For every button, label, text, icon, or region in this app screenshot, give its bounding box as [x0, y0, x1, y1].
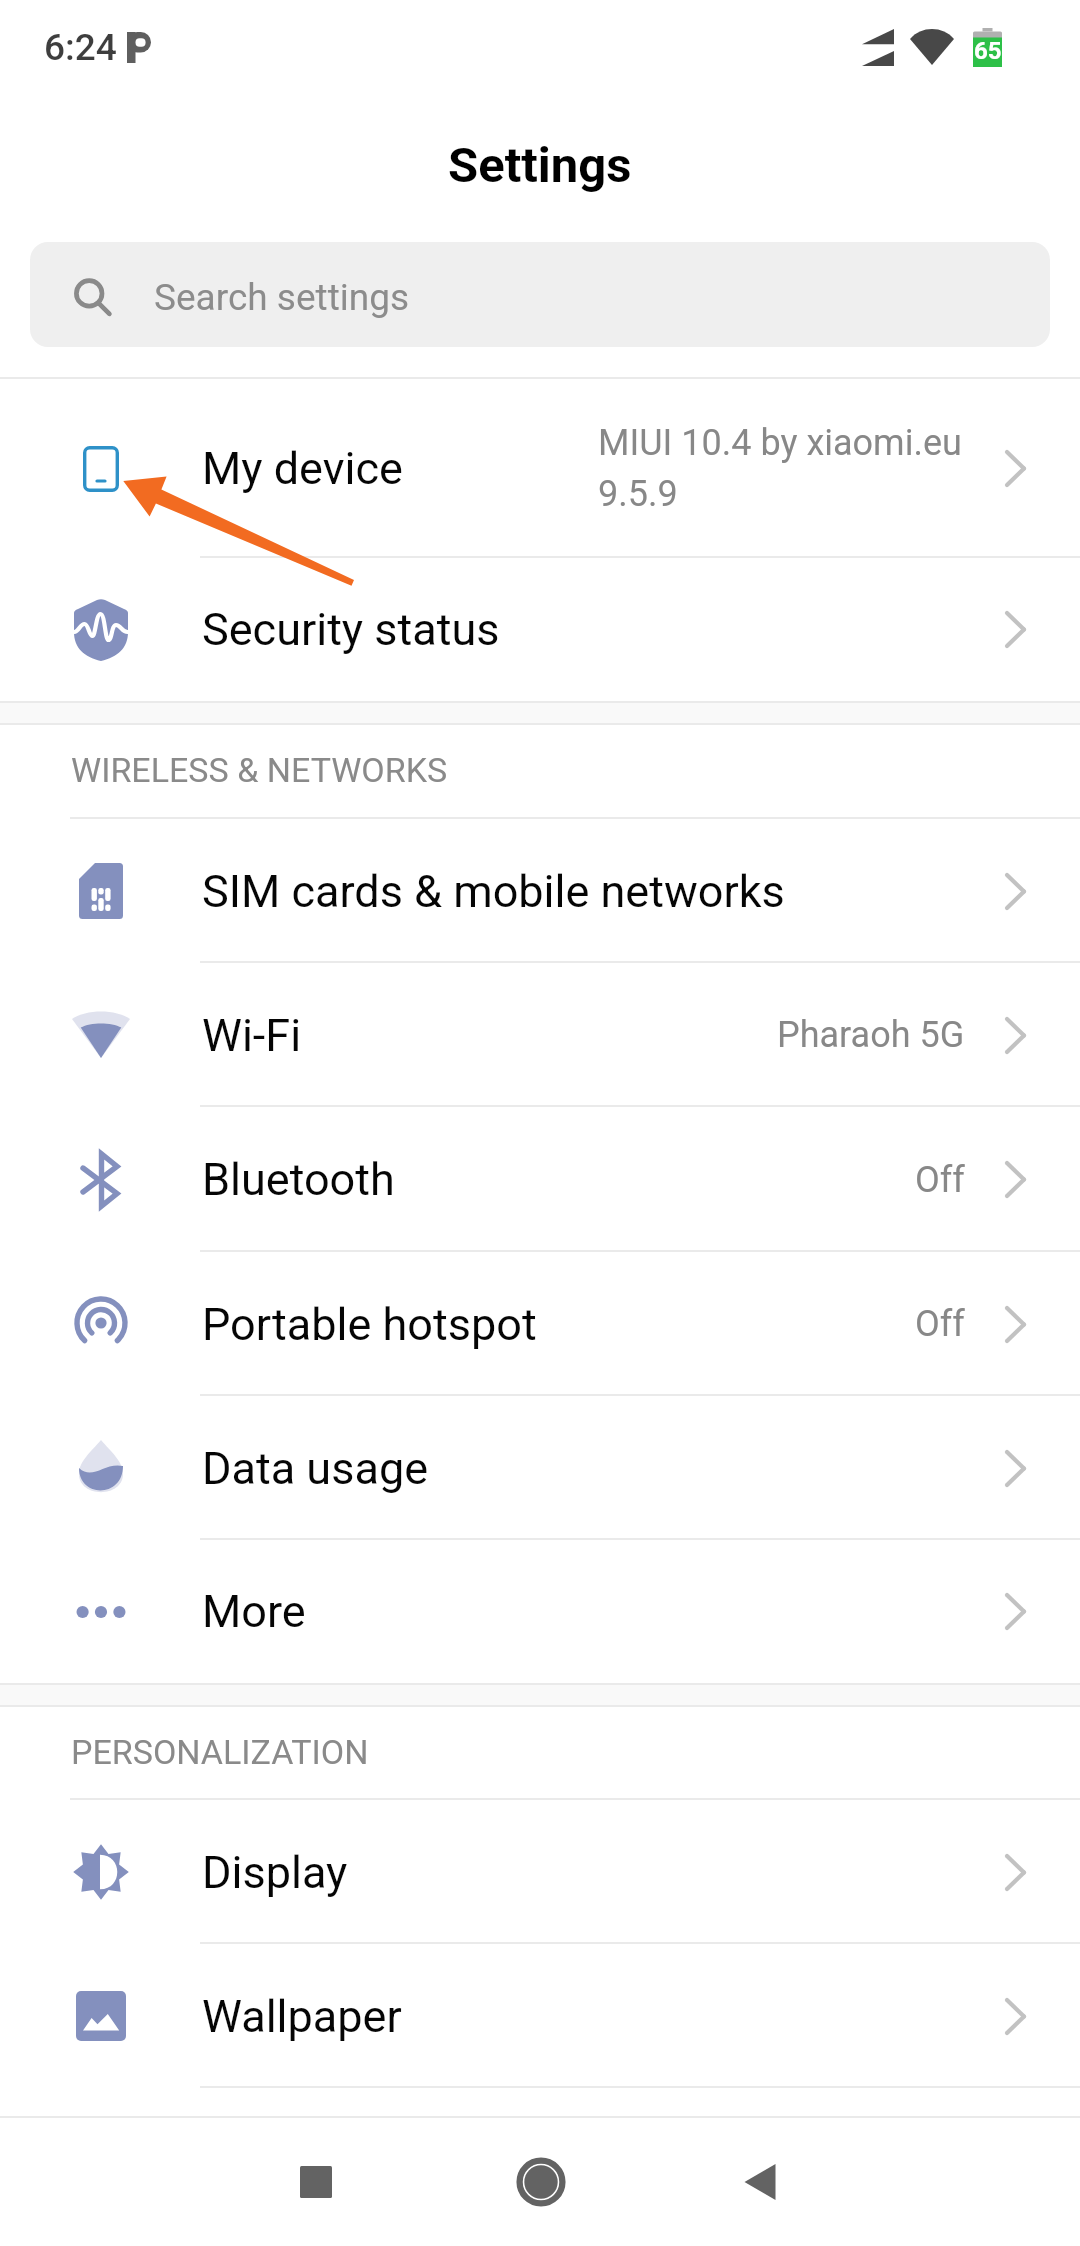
staticText: Display	[202, 1846, 348, 1899]
staticText: PERSONALIZATION	[71, 1732, 369, 1772]
button[interactable]: Data usage	[0, 1396, 1080, 1540]
button[interactable]: SIM cards & mobile networks	[0, 819, 1080, 963]
staticText: Off	[915, 1303, 965, 1345]
button[interactable]: Wi-Fi	[0, 963, 1080, 1107]
staticText: SIM cards & mobile networks	[202, 865, 785, 918]
staticText: Security status	[202, 603, 500, 656]
staticText: Data usage	[202, 1442, 429, 1495]
button[interactable]: Home	[486, 2118, 596, 2246]
staticText: 6:24	[44, 26, 117, 69]
button[interactable]: Recent apps	[261, 2118, 371, 2246]
staticText: Portable hotspot	[202, 1298, 537, 1351]
button[interactable]: Security status	[0, 558, 1080, 701]
staticText: Bluetooth	[202, 1153, 395, 1206]
button[interactable]: My device	[0, 379, 1080, 558]
button[interactable]: Search settings	[30, 242, 1050, 347]
button[interactable]: Display	[0, 1800, 1080, 1944]
button[interactable]: More	[0, 1540, 1080, 1683]
button[interactable]: Bluetooth	[0, 1107, 1080, 1252]
staticText: Wallpaper	[202, 1990, 402, 2043]
button[interactable]: Portable hotspot	[0, 1252, 1080, 1396]
staticText: Search settings	[154, 276, 410, 319]
staticText: More	[202, 1585, 306, 1638]
staticText: My device	[202, 442, 403, 495]
staticText: Wi-Fi	[202, 1009, 302, 1062]
staticText: Off	[915, 1159, 965, 1201]
staticText: WIRELESS & NETWORKS	[71, 750, 448, 790]
staticText: Settings	[448, 137, 632, 194]
button[interactable]: Back	[705, 2118, 815, 2246]
button[interactable]: Wallpaper	[0, 1944, 1080, 2088]
staticText: MIUI 10.4 by xiaomi.eu 9.5.9	[598, 422, 988, 515]
staticText: Pharaoh 5G	[777, 1014, 965, 1056]
staticText: 65	[974, 37, 1002, 65]
